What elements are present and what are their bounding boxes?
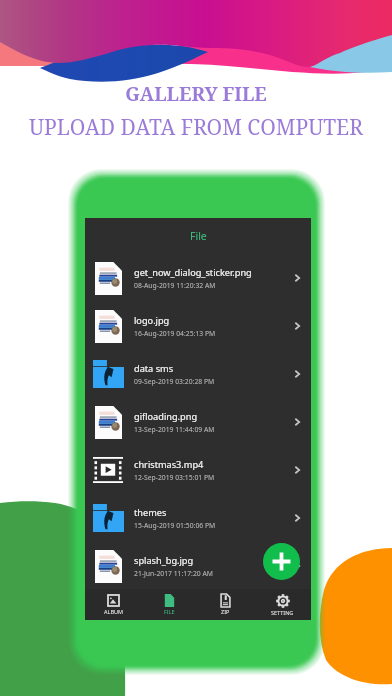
- button[interactable]: Add: [263, 543, 300, 580]
- staticText: gifloading.png: [134, 410, 198, 423]
- button[interactable]: data sms: [85, 350, 311, 398]
- staticText: themes: [134, 506, 167, 519]
- staticText: data sms: [134, 362, 174, 375]
- button[interactable]: gifloading.png: [85, 398, 311, 446]
- staticText: 09-Sep-2019 03:20:28 PM: [134, 377, 215, 386]
- staticText: 12-Sep-2019 03:15:01 PM: [134, 473, 215, 482]
- staticText: ZIP: [221, 608, 230, 615]
- staticText: 16-Aug-2019 04:25:13 PM: [134, 329, 216, 338]
- staticText: SETTING: [271, 609, 294, 616]
- staticText: 15-Aug-2019 01:50:06 PM: [134, 521, 216, 530]
- staticText: 08-Aug-2019 11:20:32 AM: [134, 281, 216, 290]
- button[interactable]: ALBUM: [85, 589, 141, 620]
- button[interactable]: FILE: [141, 589, 197, 620]
- staticText: UPLOAD DATA FROM COMPUTER: [29, 113, 363, 142]
- button[interactable]: get_now_dialog_sticker.png: [85, 254, 311, 302]
- button[interactable]: splash_bg.jpg: [85, 542, 311, 589]
- staticText: ALBUM: [104, 608, 123, 615]
- staticText: 13-Sep-2019 11:44:09 AM: [134, 425, 215, 434]
- staticText: logo.jpg: [134, 314, 170, 327]
- staticText: get_now_dialog_sticker.png: [134, 266, 252, 279]
- staticText: GALLERY FILE: [125, 81, 267, 107]
- staticText: 21-Jun-2017 11:17:20 AM: [134, 569, 213, 578]
- staticText: splash_bg.jpg: [134, 554, 194, 567]
- button[interactable]: SETTING: [254, 589, 311, 620]
- button[interactable]: christmas3.mp4: [85, 446, 311, 494]
- button[interactable]: logo.jpg: [85, 302, 311, 350]
- staticText: File: [190, 229, 207, 243]
- button[interactable]: themes: [85, 494, 311, 542]
- staticText: christmas3.mp4: [134, 458, 204, 471]
- staticText: FILE: [164, 608, 175, 615]
- button[interactable]: ZIP: [197, 589, 254, 620]
